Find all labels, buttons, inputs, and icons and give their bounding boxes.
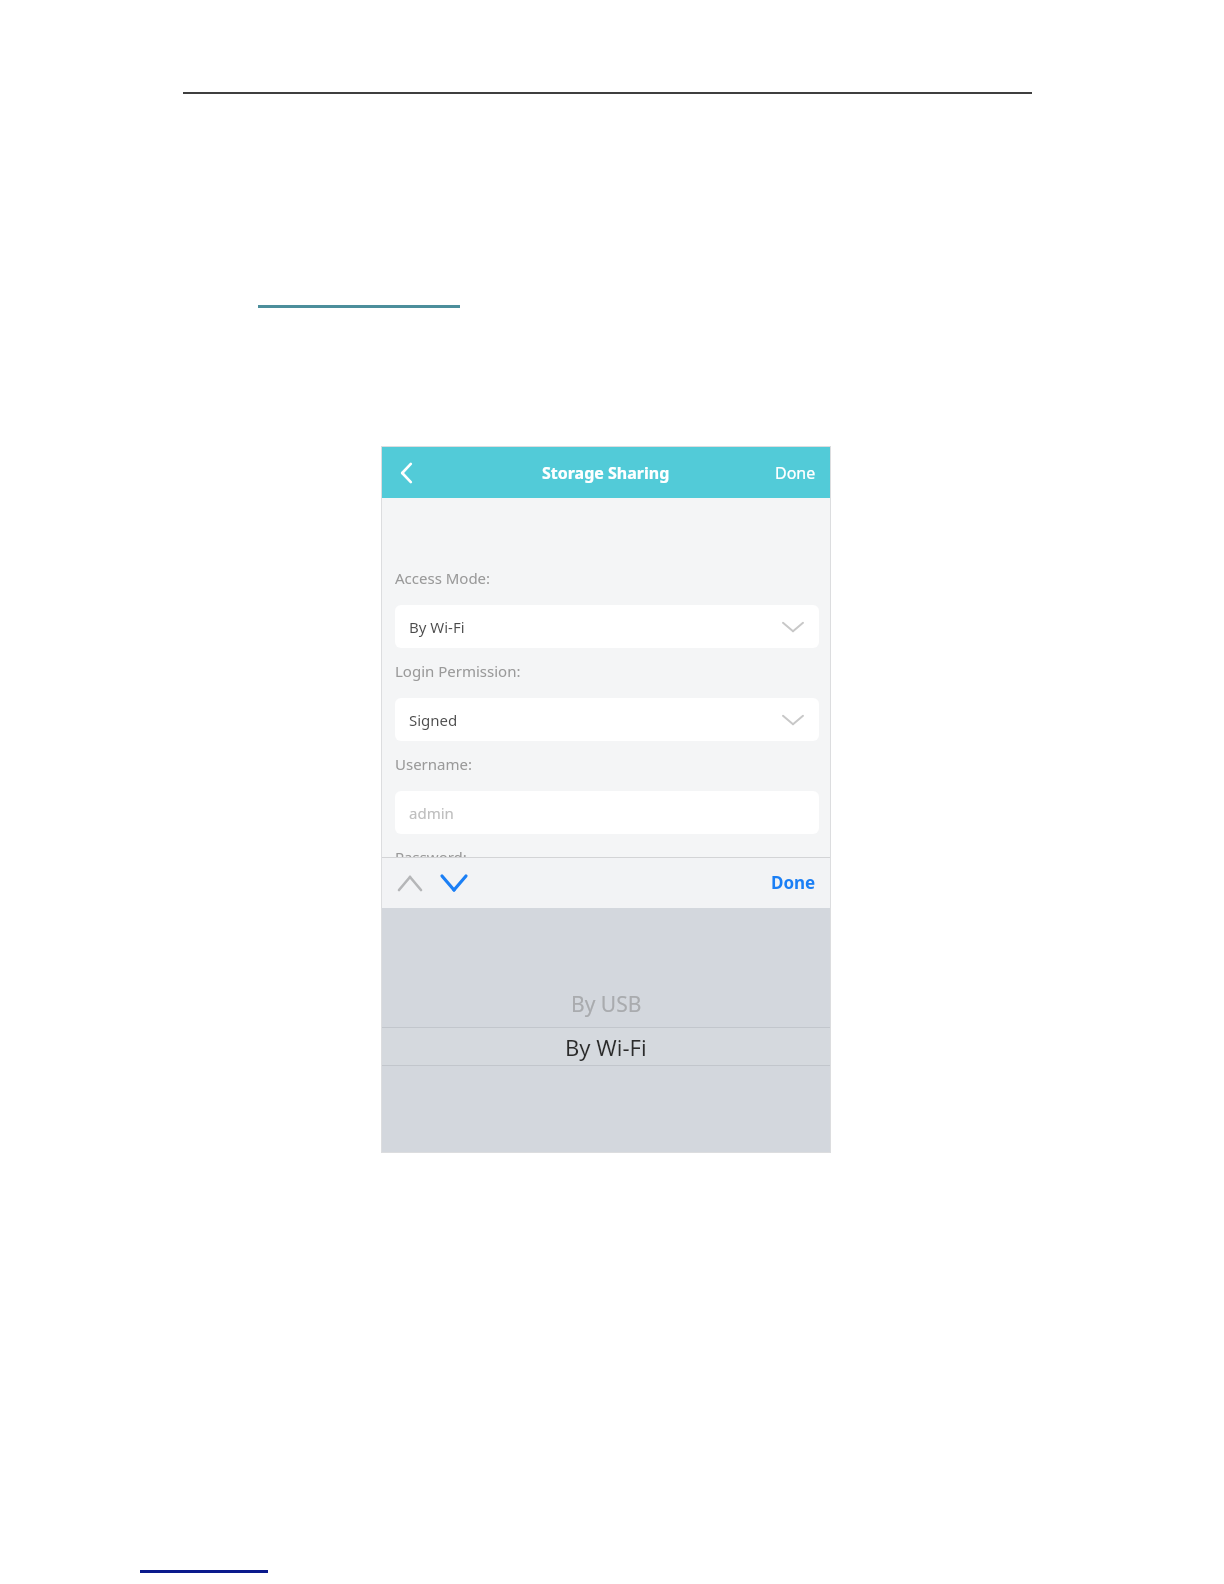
button[interactable]: Back (382, 447, 432, 498)
staticText: Done (771, 871, 816, 894)
staticText: admin (409, 803, 454, 823)
button[interactable]: By Wi-Fi (382, 1027, 830, 1066)
staticText: Signed (409, 710, 458, 730)
staticText: Access Mode: (395, 568, 491, 588)
button[interactable]: admin (395, 885, 819, 928)
staticText: Done (775, 462, 816, 484)
button[interactable]: admin (395, 791, 819, 834)
button[interactable]: Next field (432, 861, 476, 905)
staticText: By Wi-Fi (565, 1032, 647, 1062)
staticText: Login Permission: (395, 661, 521, 681)
staticText: admin (409, 897, 454, 917)
button[interactable]: By Wi-Fi (395, 605, 819, 648)
staticText: Storage Sharing (542, 462, 670, 484)
button[interactable]: Done (757, 857, 830, 908)
button[interactable]: Signed (395, 698, 819, 741)
button[interactable]: Done (761, 447, 830, 498)
staticText: Username: (395, 754, 472, 774)
staticText: Password: (395, 847, 467, 867)
staticText: By Wi-Fi (409, 617, 465, 637)
button[interactable]: By USB (382, 908, 830, 1027)
staticText: By USB (571, 990, 642, 1019)
button[interactable]: Previous field (388, 861, 432, 905)
